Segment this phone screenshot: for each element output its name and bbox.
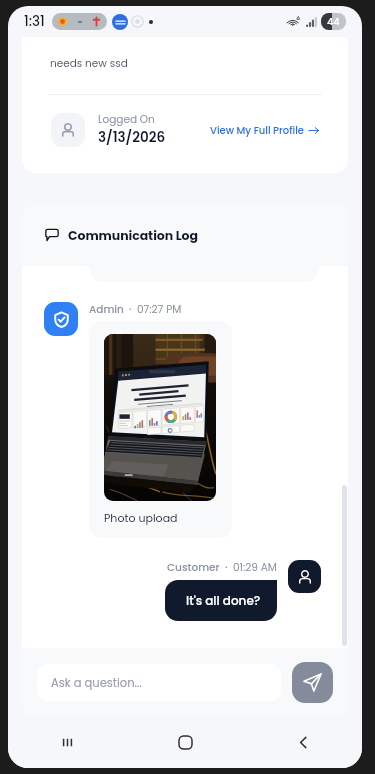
button[interactable]: Ask a question... [37,664,281,701]
button[interactable]: View My Full Profile [210,117,319,143]
staticText: 07:27 PM [137,302,182,317]
staticText: needs new ssd [50,56,128,71]
button[interactable]: Home [126,717,244,768]
staticText: · [129,302,132,317]
staticText: View My Full Profile [210,123,304,137]
button[interactable]: Send [292,662,333,703]
staticText: Customer [167,560,220,575]
staticText: Communication Log [68,227,198,244]
staticText: Admin [89,302,124,317]
staticText: Ask a question... [51,675,142,691]
staticText: Photo upload [104,510,178,525]
staticText: It's all done? [186,592,261,609]
button[interactable]: Customer avatar [288,560,321,593]
staticText: 01:29 AM [233,560,277,575]
staticText: 3/13/2026 [98,128,166,147]
staticText: · [225,560,228,575]
button[interactable]: Admin avatar [44,302,78,336]
button[interactable]: It's all done? [165,580,277,621]
button[interactable]: Photo upload [89,321,232,538]
staticText: 44 [327,15,340,28]
button[interactable]: Back [244,717,362,768]
staticText: 1:31 [24,12,45,31]
staticText: Logged On [98,112,155,127]
button[interactable]: Recent apps [8,717,126,768]
